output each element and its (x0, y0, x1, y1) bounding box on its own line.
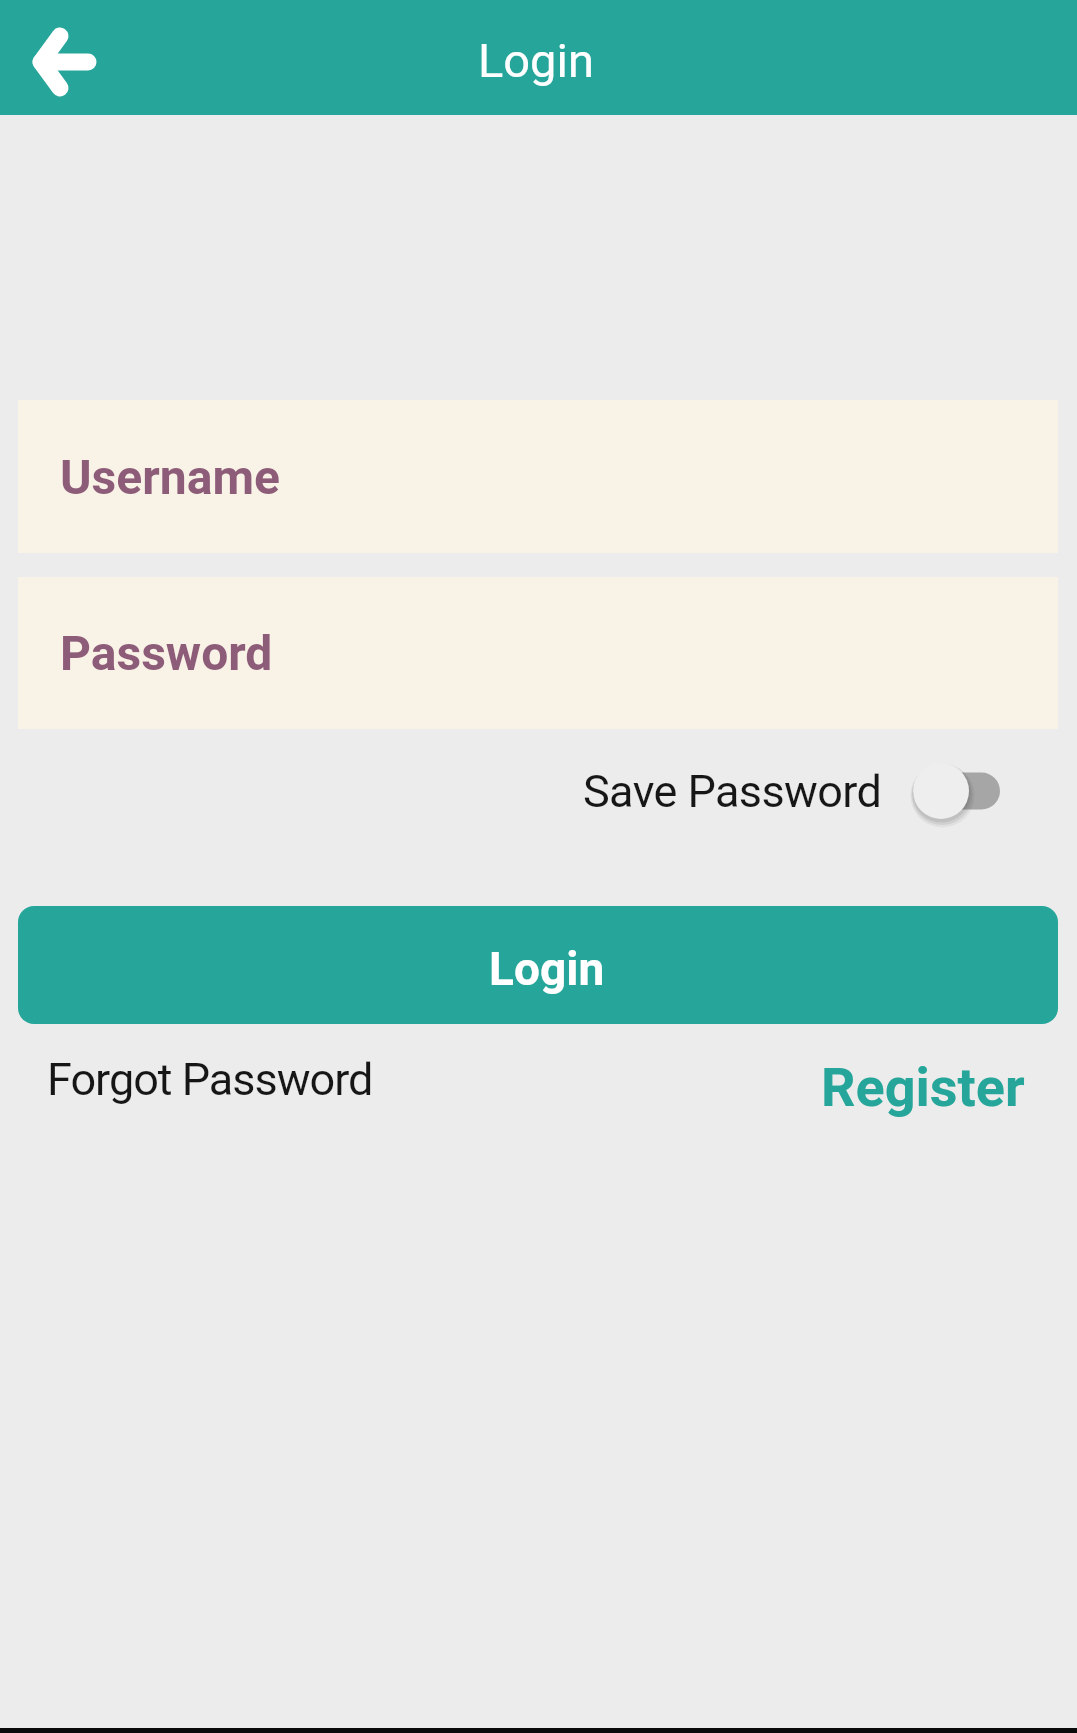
staticText: Register (821, 1056, 1025, 1119)
staticText: Password (60, 625, 273, 681)
staticText: Forgot Password (47, 1053, 373, 1106)
staticText: Login (489, 942, 605, 996)
button[interactable] (14, 8, 114, 108)
button[interactable]: Password (18, 577, 1058, 729)
staticText: Login (478, 33, 594, 88)
button[interactable]: Login (18, 906, 1058, 1024)
staticText: Save Password (583, 765, 882, 818)
button[interactable] (913, 756, 1000, 826)
button[interactable]: Forgot Password (47, 1053, 373, 1106)
button[interactable]: Register (821, 1056, 1025, 1119)
button[interactable]: Username (18, 400, 1058, 553)
staticText: Username (60, 449, 280, 505)
